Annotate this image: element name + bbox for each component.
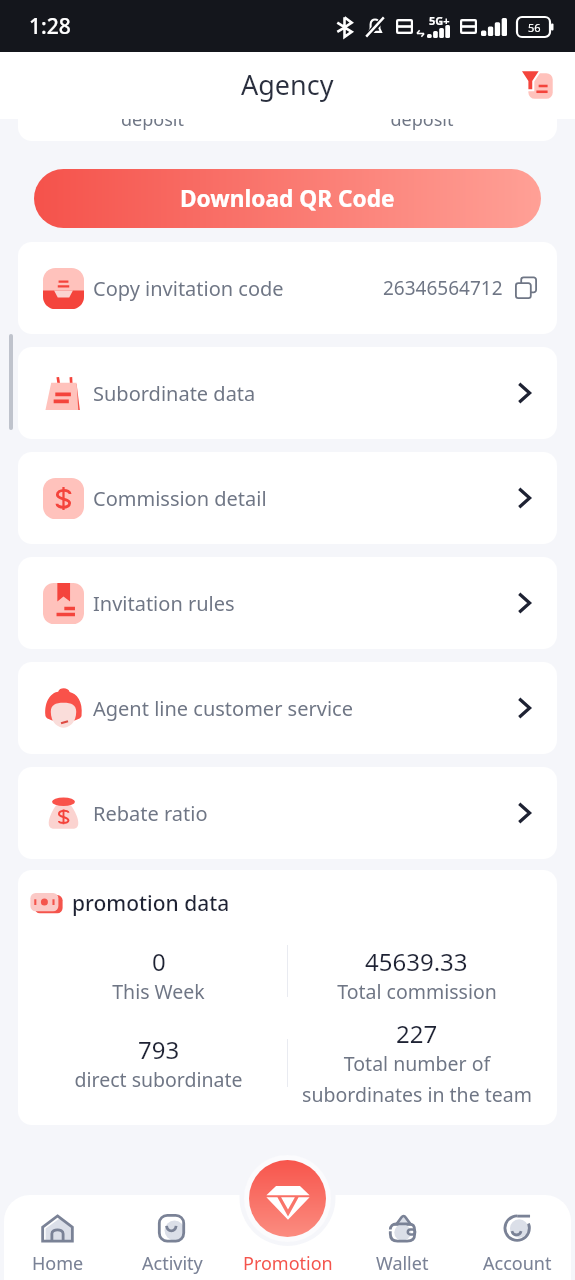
button[interactable]: Rebate ratio [18, 767, 557, 859]
button[interactable]: Agent line customer service [18, 662, 557, 754]
staticText: deposit [18, 107, 287, 132]
staticText: 26346564712 [383, 275, 503, 301]
button[interactable]: Promotion [249, 1160, 326, 1237]
button[interactable]: Download QR Code [34, 169, 541, 228]
button[interactable]: Copy invitation code [18, 242, 557, 334]
staticText: Promotion [243, 1251, 333, 1276]
staticText: Agent line customer service [93, 695, 353, 722]
button[interactable]: Wallet [345, 1195, 460, 1280]
staticText: Copy invitation code [93, 275, 284, 302]
staticText: Rebate ratio [93, 800, 208, 827]
button[interactable]: Commission detail [18, 452, 557, 544]
staticText: Commission detail [93, 485, 267, 512]
button[interactable]: Account [460, 1195, 575, 1280]
staticText: Download QR Code [180, 183, 395, 214]
button[interactable]: Invitation rules [18, 557, 557, 649]
staticText: Wallet [376, 1251, 429, 1276]
button[interactable]: Activity [115, 1195, 230, 1280]
button[interactable]: Promotion [230, 1195, 345, 1280]
staticText: Agency [241, 66, 334, 103]
staticText: 793 [138, 1033, 180, 1066]
staticText: This Week [112, 978, 205, 1005]
staticText: Activity [142, 1251, 203, 1276]
staticText: Subordinate data [93, 380, 256, 407]
staticText: deposit [287, 107, 557, 132]
staticText: 5G+ [429, 13, 450, 28]
staticText: Home [32, 1251, 84, 1276]
staticText: direct subordinate [74, 1066, 243, 1093]
staticText: 56 [528, 20, 541, 35]
staticText: 0 [152, 945, 166, 978]
button[interactable]: Home [0, 1195, 115, 1280]
staticText: Invitation rules [93, 590, 235, 617]
button[interactable]: Subordinate data [18, 347, 557, 439]
staticText: promotion data [72, 889, 230, 918]
staticText: Total number of subordinates in the team [302, 1050, 532, 1108]
button[interactable]: Filter [515, 63, 561, 109]
staticText: Total commission [337, 978, 497, 1005]
staticText: 227 [396, 1017, 438, 1050]
staticText: 1:28 [29, 12, 71, 41]
staticText: Account [483, 1251, 552, 1276]
staticText: 45639.33 [365, 945, 468, 978]
